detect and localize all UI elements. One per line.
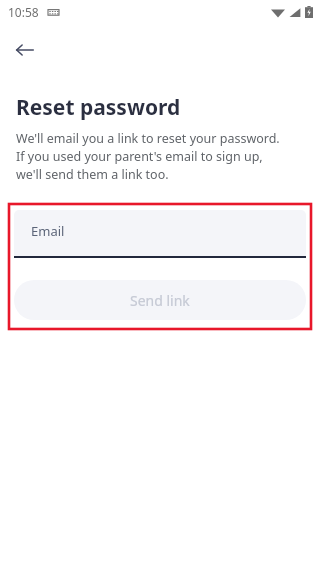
staticText: Email bbox=[31, 222, 65, 240]
button[interactable]: Back bbox=[9, 34, 41, 66]
staticText: Reset password bbox=[16, 93, 181, 122]
staticText: If you used your parent's email to sign … bbox=[16, 148, 263, 166]
staticText: Send link bbox=[130, 291, 190, 310]
button[interactable]: Send link bbox=[14, 280, 306, 320]
staticText: We'll email you a link to reset your pas… bbox=[16, 130, 280, 148]
button[interactable]: Email bbox=[14, 210, 306, 258]
staticText: we'll send them a link too. bbox=[16, 166, 169, 184]
staticText: 10:58 bbox=[8, 4, 39, 20]
